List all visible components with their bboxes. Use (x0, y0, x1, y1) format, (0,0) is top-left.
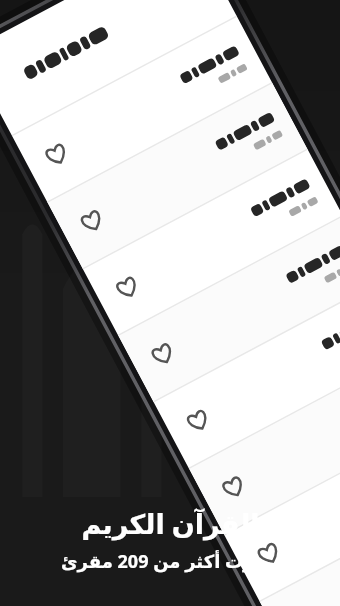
staticText: بصوت أكثر من 209 مقرئ (61, 549, 279, 574)
staticText: القرآن الكريم (81, 505, 260, 542)
button[interactable]: Favourite reciter (274, 273, 334, 333)
